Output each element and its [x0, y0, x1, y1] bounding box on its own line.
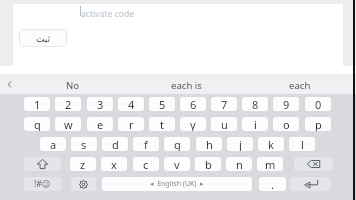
button[interactable]: h [196, 137, 222, 151]
staticText: 5 [159, 97, 166, 111]
staticText: 1 [34, 97, 41, 111]
button[interactable]: l [289, 137, 315, 151]
button[interactable]: v [164, 157, 190, 171]
staticText: e [97, 117, 104, 131]
button[interactable]: c [133, 157, 159, 171]
staticText: !#☺ [34, 178, 51, 190]
button[interactable]: f [133, 137, 159, 151]
staticText: ◂ English (UK) ▸ [150, 179, 204, 189]
button[interactable]: 6 [180, 97, 206, 111]
button[interactable]: Shift [24, 157, 61, 171]
staticText: y [190, 117, 196, 131]
button[interactable]: 5 [149, 97, 175, 111]
staticText: activate code [81, 8, 135, 20]
staticText: w [64, 117, 73, 131]
staticText: c [143, 157, 149, 171]
staticText: b [205, 157, 212, 171]
staticText: j [239, 137, 242, 151]
staticText: 8 [252, 97, 259, 111]
button[interactable]: x [101, 157, 127, 171]
staticText: 0 [315, 97, 322, 111]
button[interactable]: g [164, 137, 190, 151]
button[interactable]: e [87, 117, 113, 131]
button[interactable]: Symbols [24, 177, 61, 191]
staticText: n [236, 157, 243, 171]
staticText: u [221, 117, 228, 131]
button[interactable]: each [243, 74, 356, 94]
staticText: 4 [128, 97, 135, 111]
button[interactable]: ثبت [19, 29, 67, 47]
button[interactable]: b [195, 157, 221, 171]
staticText: 7 [221, 97, 228, 111]
button[interactable]: No [16, 74, 130, 94]
button[interactable]: z [70, 157, 96, 171]
button[interactable]: q [24, 117, 50, 131]
staticText: s [81, 137, 87, 151]
staticText: o [283, 117, 290, 131]
staticText: p [315, 117, 322, 131]
staticText: v [174, 157, 180, 171]
staticText: No [66, 79, 80, 92]
staticText: each is [171, 79, 202, 92]
button[interactable]: Backspace [294, 157, 333, 171]
button[interactable]: 2 [55, 97, 81, 111]
staticText: l [301, 137, 304, 151]
staticText: g [174, 137, 181, 151]
button[interactable]: u [211, 117, 237, 131]
button[interactable]: ◂ English (UK) ▸ [102, 177, 252, 191]
button[interactable]: Enter [290, 177, 331, 191]
button[interactable]: a [40, 137, 66, 151]
button[interactable]: w [55, 117, 81, 131]
button[interactable]: 0 [305, 97, 331, 111]
staticText: a [50, 137, 57, 151]
staticText: ثبت [36, 34, 51, 44]
staticText: t [160, 117, 164, 131]
staticText: x [111, 157, 117, 171]
staticText: m [265, 157, 276, 171]
button[interactable]: 4 [118, 97, 144, 111]
staticText: h [206, 137, 213, 151]
button[interactable]: r [118, 117, 144, 131]
button[interactable]: 1 [24, 97, 50, 111]
button[interactable]: 7 [211, 97, 237, 111]
staticText: each [289, 79, 311, 92]
button[interactable]: 9 [273, 97, 299, 111]
button[interactable]: j [227, 137, 253, 151]
staticText: z [80, 157, 86, 171]
button[interactable]: d [102, 137, 128, 151]
button[interactable]: n [226, 157, 252, 171]
button[interactable]: k [258, 137, 284, 151]
button[interactable]: 3 [87, 97, 113, 111]
button[interactable]: 8 [242, 97, 268, 111]
button[interactable]: . [259, 177, 286, 191]
button[interactable]: m [257, 157, 283, 171]
staticText: . [271, 177, 274, 191]
staticText: 3 [97, 97, 104, 111]
button[interactable]: Keyboard settings [71, 177, 96, 191]
button[interactable]: each is [130, 74, 243, 94]
staticText: i [254, 117, 257, 131]
staticText: 9 [283, 97, 290, 111]
button[interactable]: o [273, 117, 299, 131]
staticText: d [112, 137, 119, 151]
staticText: 6 [190, 97, 197, 111]
button[interactable]: y [180, 117, 206, 131]
button[interactable]: Previous suggestions [0, 74, 18, 94]
staticText: q [34, 117, 41, 131]
button[interactable]: p [305, 117, 331, 131]
staticText: 2 [65, 97, 72, 111]
staticText: f [144, 137, 148, 151]
button[interactable]: i [242, 117, 268, 131]
button[interactable]: t [149, 117, 175, 131]
button[interactable]: s [71, 137, 97, 151]
staticText: r [129, 117, 134, 131]
staticText: k [268, 137, 274, 151]
